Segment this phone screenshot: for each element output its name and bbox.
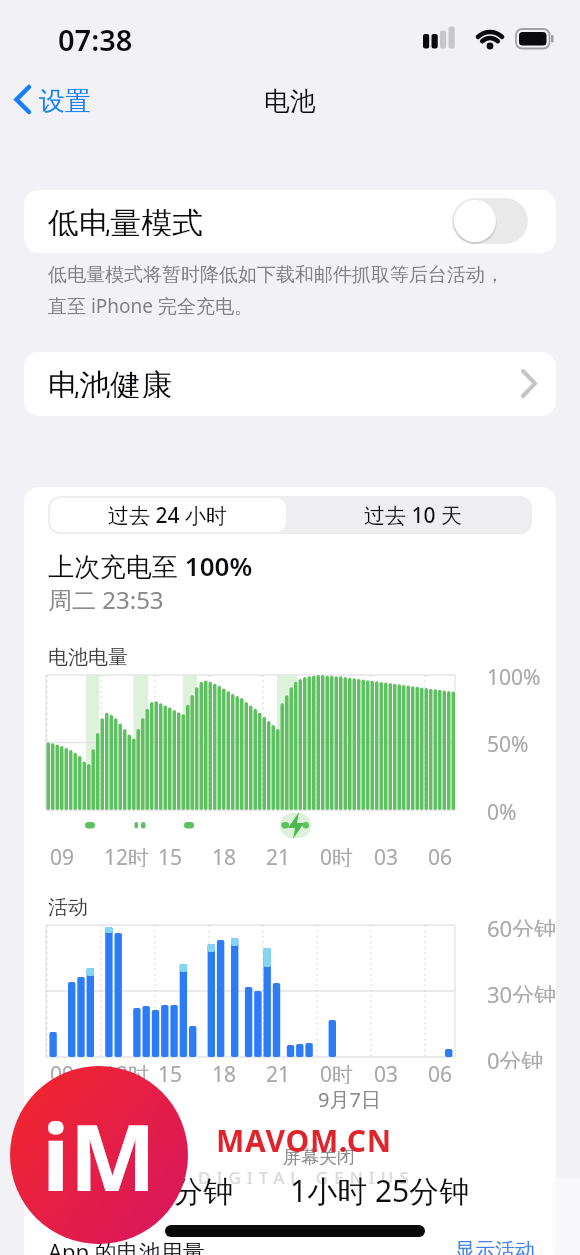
- staticText: 60分钟: [487, 913, 557, 937]
- staticText: 0分钟: [487, 1045, 544, 1069]
- button[interactable]: [296, 498, 532, 532]
- button[interactable]: 设置: [39, 85, 119, 115]
- staticText: 06: [428, 843, 453, 867]
- staticText: 06: [428, 1060, 453, 1084]
- staticText: 电池电量: [48, 645, 128, 669]
- staticText: 100%: [487, 663, 541, 687]
- staticText: 21: [266, 843, 291, 867]
- staticText: 活动: [48, 895, 88, 919]
- staticText: 09: [50, 843, 75, 867]
- staticText: 电池健康: [48, 366, 172, 398]
- staticText: 设置: [39, 85, 91, 115]
- staticText: 0时: [320, 1060, 354, 1084]
- staticText: 18: [212, 1060, 237, 1084]
- staticText: 0%: [487, 798, 517, 822]
- staticText: MAVOM.CN: [216, 1120, 393, 1154]
- staticText: 低电量模式将暂时降低如下载和邮件抓取等后台活动，: [48, 263, 504, 287]
- staticText: 03: [374, 1060, 399, 1084]
- staticText: 低电量模式: [48, 204, 203, 236]
- staticText: 直至 iPhone 完全充电。: [48, 293, 253, 317]
- button[interactable]: [24, 352, 556, 416]
- staticText: 0时: [320, 843, 354, 867]
- staticText: 15: [158, 843, 183, 867]
- staticText: 50%: [487, 730, 529, 754]
- staticText: DIGITAL GENIUS: [198, 1166, 415, 1189]
- staticText: 上次充电至 100%: [48, 548, 253, 580]
- staticText: 电池: [264, 85, 316, 115]
- staticText: 过去 10 天: [364, 501, 462, 530]
- staticText: 03: [374, 843, 399, 867]
- staticText: 12时: [104, 1060, 150, 1084]
- staticText: 30分钟: [487, 979, 557, 1003]
- button[interactable]: [50, 498, 286, 532]
- button[interactable]: [24, 190, 556, 253]
- staticText: App 的电池用量: [48, 1236, 205, 1255]
- staticText: 周二 23:53: [48, 583, 164, 611]
- staticText: 屏幕关闭: [283, 1146, 355, 1168]
- staticText: 1小时 25分钟: [290, 1170, 470, 1206]
- staticText: 07:38: [58, 20, 133, 52]
- staticText: 显示活动: [455, 1238, 535, 1255]
- button[interactable]: 显示活动: [455, 1236, 565, 1255]
- staticText: 21: [266, 1060, 291, 1084]
- staticText: 9月7日: [318, 1086, 381, 1110]
- staticText: 15: [158, 1060, 183, 1084]
- staticText: 18: [212, 843, 237, 867]
- staticText: 09: [50, 1060, 75, 1084]
- staticText: 12时: [104, 843, 150, 867]
- staticText: 过去 24 小时: [108, 501, 227, 530]
- staticText: iM: [42, 1093, 157, 1218]
- staticText: 3小时 31分钟: [54, 1170, 234, 1206]
